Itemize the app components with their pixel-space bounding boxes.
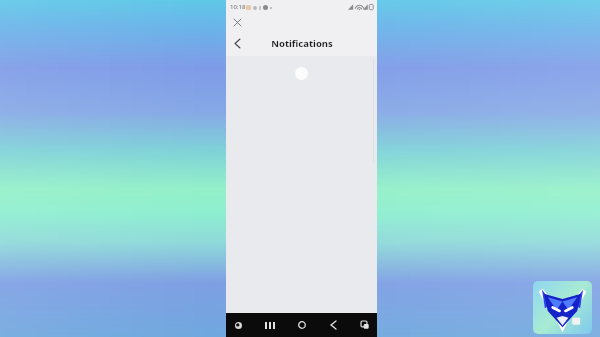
- staticText: Notifications: [271, 37, 333, 50]
- button[interactable]: Recents: [262, 317, 278, 333]
- button[interactable]: Back: [229, 35, 245, 51]
- staticText: 10:18: [230, 3, 246, 11]
- button[interactable]: Screenshot: [357, 317, 373, 333]
- button[interactable]: Logo: [533, 281, 592, 334]
- button[interactable]: Record: [230, 317, 246, 333]
- button[interactable]: Back: [325, 317, 341, 333]
- button[interactable]: Close: [230, 15, 244, 29]
- button[interactable]: Home: [294, 317, 310, 333]
